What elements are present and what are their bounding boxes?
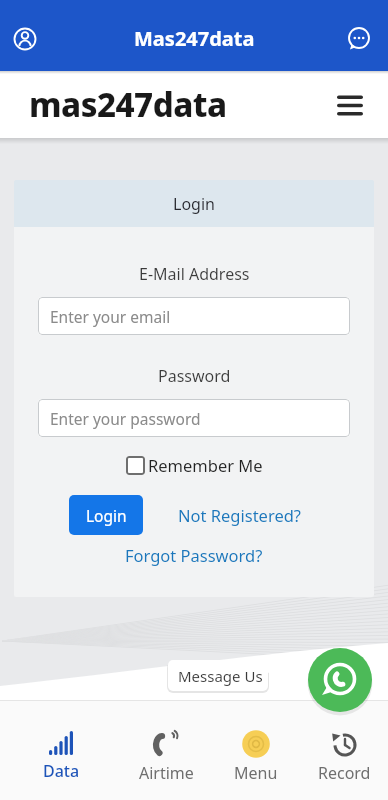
button[interactable] [308,648,372,712]
staticText: Remember Me [148,454,263,476]
staticText: Mas247data [134,25,255,52]
button[interactable]: Menu [212,730,300,784]
staticText: Airtime [139,762,194,784]
button[interactable]: Record [300,730,388,784]
staticText: Forgot Password? [125,544,263,566]
button[interactable] [12,26,38,52]
staticText: Login [173,193,215,215]
button[interactable]: Enter your password [38,399,350,437]
staticText: Record [318,762,371,784]
button[interactable]: Not Registered? [178,504,302,526]
button[interactable] [346,26,372,52]
button[interactable]: Forgot Password? [125,544,263,566]
staticText: E-Mail Address [139,263,250,285]
button[interactable]: Data [17,730,105,782]
staticText: Password [158,365,231,387]
button[interactable]: Airtime [122,730,210,784]
staticText: Enter your email [50,306,171,327]
staticText: Login [86,505,127,526]
button[interactable]: Remember Me [126,454,263,476]
staticText: Enter your password [50,408,201,429]
button[interactable] [336,91,364,119]
button[interactable]: Message Us [166,659,278,693]
button[interactable]: Enter your email [38,297,350,335]
staticText: Not Registered? [178,504,302,526]
staticText: Message Us [178,666,263,686]
button[interactable]: Login [69,495,143,535]
staticText: mas247data [29,82,227,127]
staticText: Data [43,760,80,782]
staticText: Menu [234,762,278,784]
